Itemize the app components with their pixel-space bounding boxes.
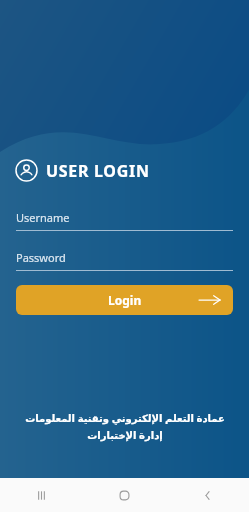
button[interactable]: Username: [16, 210, 233, 231]
button[interactable]: Back: [166, 478, 249, 512]
staticText: Login: [108, 292, 142, 308]
button[interactable]: Password: [16, 250, 233, 271]
staticText: إدارة الإختبارات: [87, 428, 163, 442]
staticText: Password: [16, 250, 66, 265]
button[interactable]: User: [15, 159, 150, 182]
button[interactable]: Home: [83, 478, 166, 512]
other: User: [15, 159, 38, 182]
button[interactable]: Login: [16, 285, 233, 315]
staticText: USER LOGIN: [46, 160, 150, 182]
button[interactable]: Recent apps: [0, 478, 83, 512]
staticText: Username: [16, 210, 70, 225]
staticText: عمادة التعلم الإلكتروني وتقنية المعلومات: [25, 411, 225, 425]
